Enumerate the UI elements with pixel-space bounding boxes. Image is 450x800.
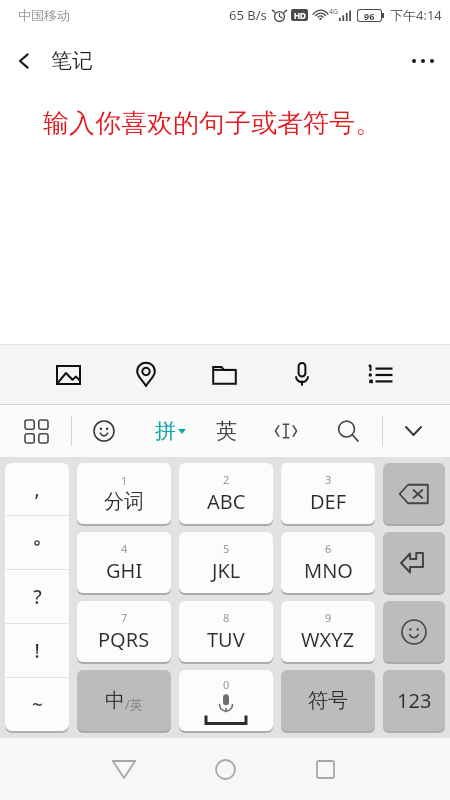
button[interactable]: 1	[77, 463, 171, 524]
staticText: ABC	[207, 488, 246, 515]
staticText: 7	[121, 610, 128, 625]
button[interactable]: mic	[273, 345, 331, 404]
staticText: 2	[223, 472, 230, 487]
staticText: 下午4:14	[390, 6, 442, 24]
staticText: TUV	[207, 626, 245, 653]
button[interactable]: Home	[193, 738, 257, 800]
button[interactable]: 8	[179, 601, 273, 662]
button[interactable]: ,	[5, 463, 69, 515]
button[interactable]: Emoji	[78, 405, 130, 457]
staticText: 中国移动	[18, 7, 70, 23]
button[interactable]: Emoji	[383, 601, 445, 662]
staticText: JKL	[212, 557, 241, 584]
button[interactable]: folder	[195, 345, 253, 404]
button[interactable]: English	[200, 405, 252, 457]
button[interactable]: 123	[383, 670, 445, 731]
button[interactable]: ?	[5, 570, 69, 623]
other: Backspace	[399, 483, 429, 505]
button[interactable]: 0	[179, 670, 273, 731]
button[interactable]: Cursor	[260, 405, 312, 457]
staticText: 1	[121, 473, 128, 488]
staticText: 4	[121, 541, 128, 556]
staticText: 5	[223, 541, 230, 556]
staticText: 6	[325, 541, 332, 556]
staticText: PQRS	[98, 626, 150, 653]
staticText: 中	[105, 688, 125, 713]
staticText: 8	[223, 610, 230, 625]
button[interactable]: Keyboard layout	[10, 405, 62, 457]
staticText: 3	[325, 472, 332, 487]
button[interactable]: image	[39, 345, 97, 404]
staticText: 65 B/s	[229, 6, 267, 24]
button[interactable]: 4	[77, 532, 171, 593]
button[interactable]: Back	[92, 738, 156, 800]
button[interactable]	[5, 516, 69, 569]
staticText: HD	[294, 10, 306, 21]
staticText: GHI	[106, 557, 143, 584]
button[interactable]: Pinyin	[144, 405, 196, 457]
staticText: 符号	[308, 688, 348, 713]
button[interactable]: Backspace	[383, 463, 445, 524]
staticText: /英	[125, 695, 143, 713]
staticText: 0	[223, 677, 230, 692]
staticText: DEF	[310, 488, 347, 515]
other: Emoji	[401, 619, 427, 645]
staticText: ,	[34, 476, 40, 502]
button[interactable]: location	[117, 345, 175, 404]
staticText: 分词	[104, 489, 144, 514]
button[interactable]: Enter	[383, 532, 445, 593]
staticText: MNO	[304, 557, 353, 584]
button[interactable]: More options	[396, 30, 450, 92]
button[interactable]: Search	[322, 405, 374, 457]
staticText: !	[34, 638, 40, 664]
staticText: 123	[397, 687, 432, 714]
button[interactable]: list	[351, 345, 409, 404]
button[interactable]: 符号	[281, 670, 375, 731]
button[interactable]: 2	[179, 463, 273, 524]
button[interactable]: Recents	[293, 738, 357, 800]
staticText: WXYZ	[301, 626, 355, 653]
button[interactable]: Back	[0, 30, 48, 92]
staticText: ?	[33, 584, 42, 610]
staticText: 拼	[155, 418, 176, 444]
staticText: ~	[32, 692, 43, 718]
button[interactable]: 3	[281, 463, 375, 524]
button[interactable]: 中	[77, 670, 171, 731]
staticText: 输入你喜欢的句子或者符号。	[43, 107, 381, 140]
button[interactable]: 7	[77, 601, 171, 662]
button[interactable]: 6	[281, 532, 375, 593]
staticText: 4G	[329, 7, 339, 17]
staticText: 笔记	[51, 48, 93, 74]
other: Enter	[400, 549, 428, 577]
button[interactable]: Hide keyboard	[387, 405, 439, 457]
staticText: 英	[216, 418, 237, 444]
button[interactable]: !	[5, 624, 69, 677]
button[interactable]: ~	[5, 678, 69, 731]
staticText: 9	[325, 610, 332, 625]
button[interactable]: 9	[281, 601, 375, 662]
button[interactable]: 5	[179, 532, 273, 593]
staticText: 96	[364, 10, 375, 21]
